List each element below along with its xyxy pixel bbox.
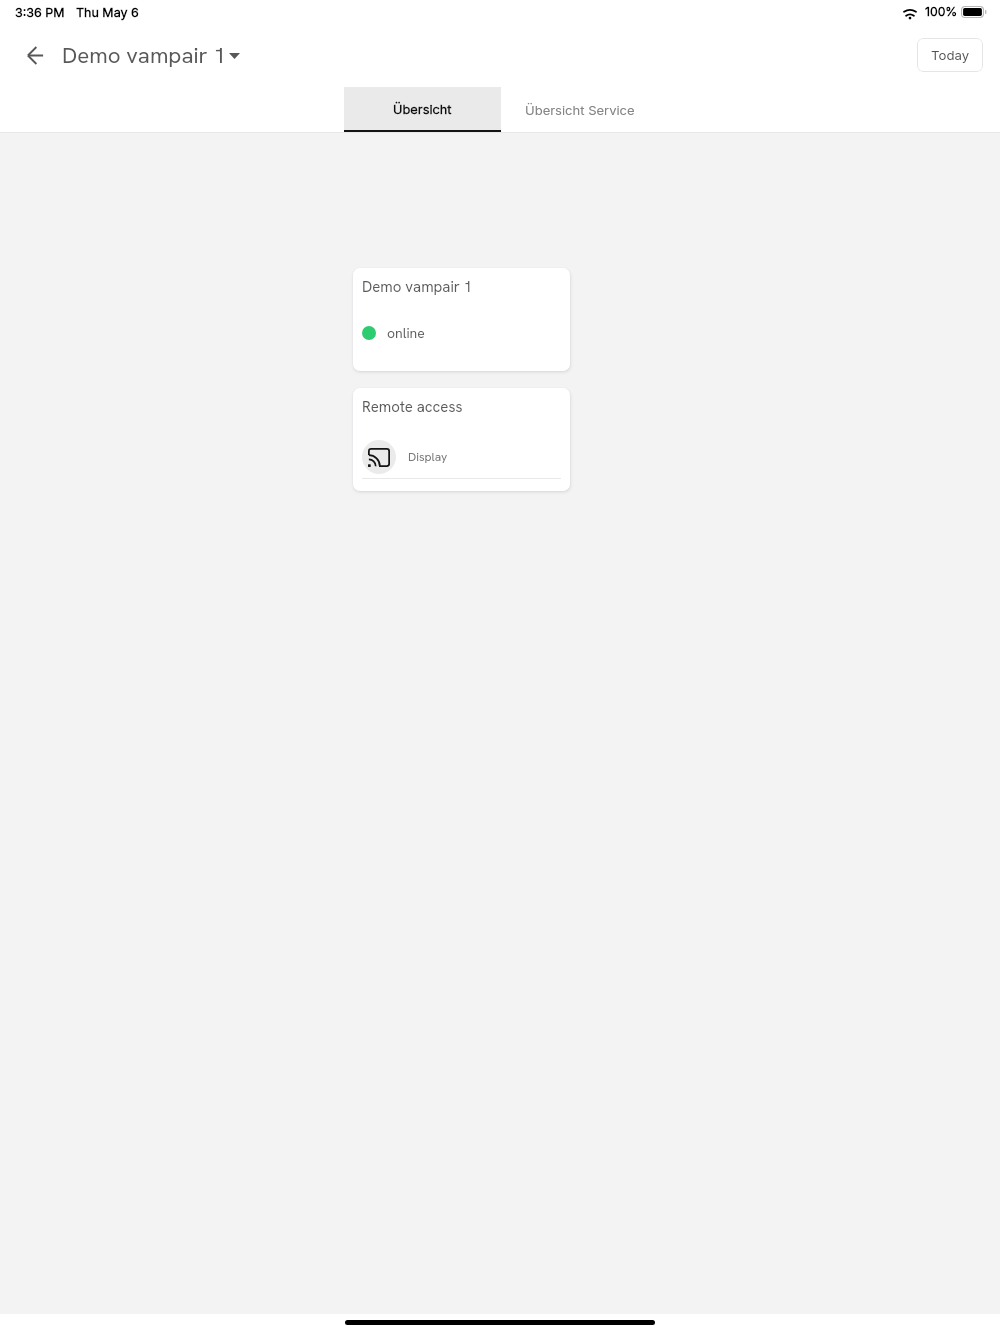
staticText: online [387,324,425,342]
button[interactable]: Übersicht Service [501,87,658,133]
staticText: Demo vampair 1 [62,41,226,70]
button[interactable]: Übersicht [344,87,501,133]
button[interactable]: Demo vampair 1 [353,268,570,371]
staticText: Remote access [362,397,463,417]
staticText: Today [931,47,970,63]
staticText: Übersicht Service [525,102,635,118]
staticText: 3:36 PM [15,5,65,20]
staticText: Display [408,449,448,465]
staticText: Übersicht [393,102,452,117]
button[interactable]: Back [13,33,57,77]
button[interactable]: Demo vampair 1 [60,35,242,76]
staticText: Thu May 6 [76,5,139,20]
button[interactable]: Remote access [353,388,570,491]
staticText: Demo vampair 1 [362,277,473,297]
button[interactable]: Display [353,438,570,476]
staticText: 100% [925,4,958,19]
button[interactable]: Today [917,38,983,72]
